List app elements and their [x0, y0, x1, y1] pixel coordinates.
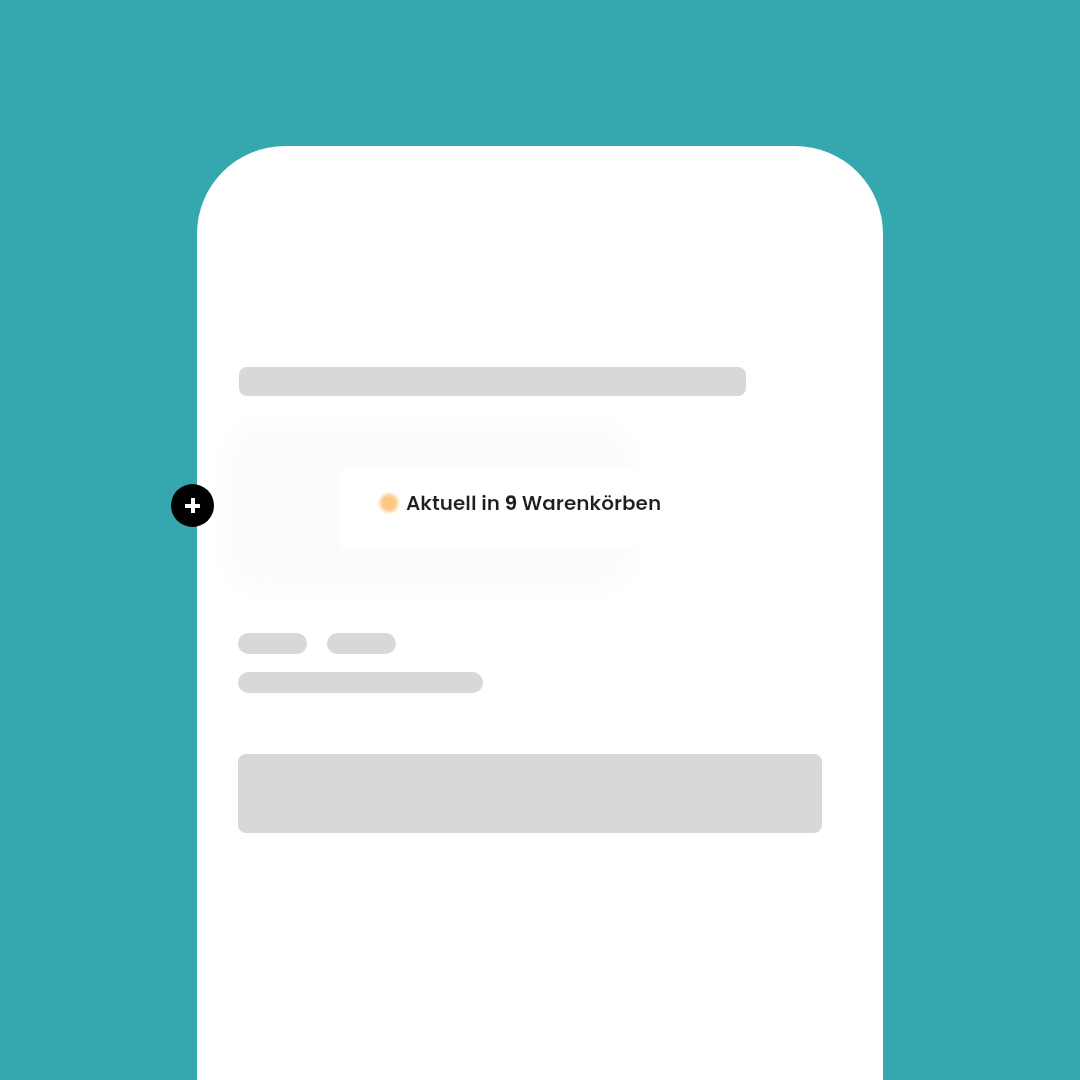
button[interactable]: Aktuell in 9 Warenkörben [341, 469, 721, 548]
button[interactable]: Hinzufügen [171, 484, 214, 527]
staticText: Aktuell in 9 Warenkörben [406, 489, 662, 517]
